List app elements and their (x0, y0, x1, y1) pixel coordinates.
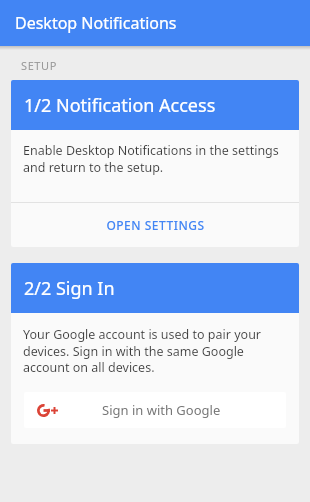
other: Google Plus (37, 404, 58, 417)
staticText: Enable Desktop Notifications in the sett… (23, 142, 285, 175)
staticText: Desktop Notifications (15, 12, 177, 34)
staticText: SETUP (21, 58, 57, 73)
button[interactable]: Google Plus (24, 392, 286, 428)
staticText: Sign in with Google (102, 401, 221, 419)
staticText: 2/2 Sign In (24, 276, 115, 301)
staticText: 1/2 Notification Access (24, 93, 216, 118)
staticText: Your Google account is used to pair your… (23, 326, 277, 375)
button[interactable]: OPEN SETTINGS (11, 203, 299, 247)
staticText: OPEN SETTINGS (106, 217, 205, 233)
